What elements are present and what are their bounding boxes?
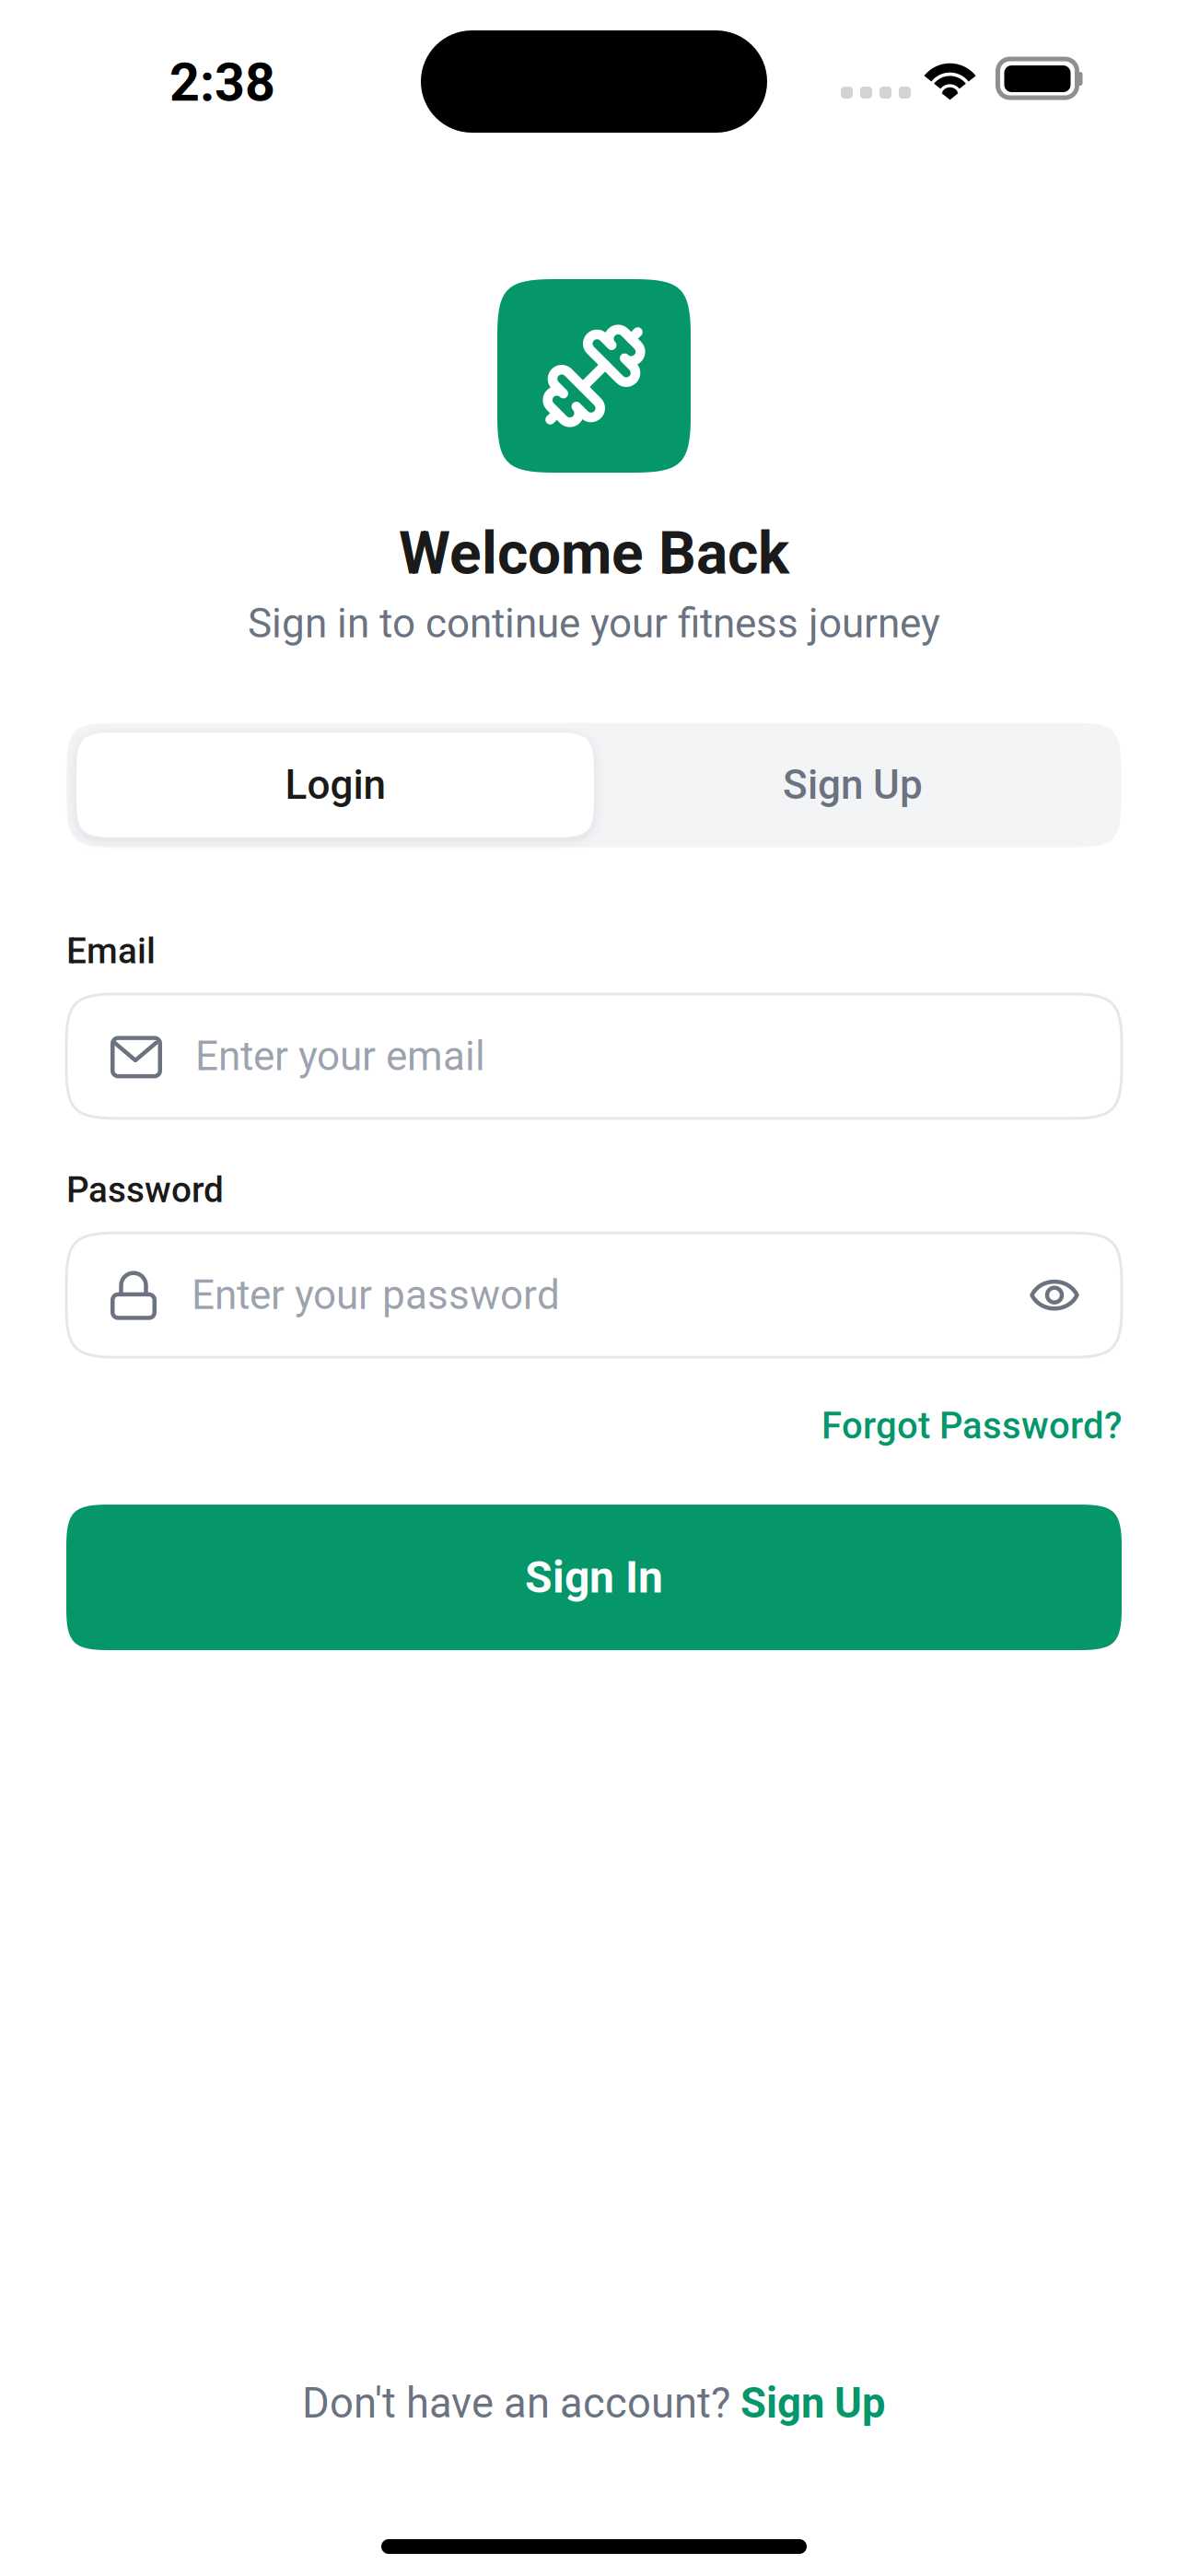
staticText: Sign Up	[740, 2379, 886, 2428]
staticText: Welcome Back	[399, 519, 789, 588]
staticText: Sign in to continue your fitness journey	[248, 600, 940, 647]
staticText: Login	[285, 761, 385, 809]
staticText: Forgot Password?	[821, 1404, 1122, 1447]
button[interactable]: Login	[76, 733, 594, 838]
staticText: Password	[66, 1169, 224, 1211]
button[interactable]: Forgot Password?	[821, 1404, 1122, 1447]
button[interactable]: Sign In	[66, 1505, 1122, 1650]
staticText: Enter your email	[195, 1032, 485, 1080]
button[interactable]: Show password	[1030, 1277, 1079, 1314]
staticText: Sign Up	[783, 761, 923, 809]
staticText: Enter your password	[192, 1271, 560, 1319]
staticText: Sign In	[525, 1551, 663, 1603]
button[interactable]: Sign Up	[594, 733, 1112, 838]
staticText: Email	[66, 930, 156, 972]
button[interactable]: Sign Up	[740, 2379, 886, 2428]
staticText: 2:38	[169, 52, 275, 114]
staticText: Don't have an account?	[302, 2379, 730, 2428]
